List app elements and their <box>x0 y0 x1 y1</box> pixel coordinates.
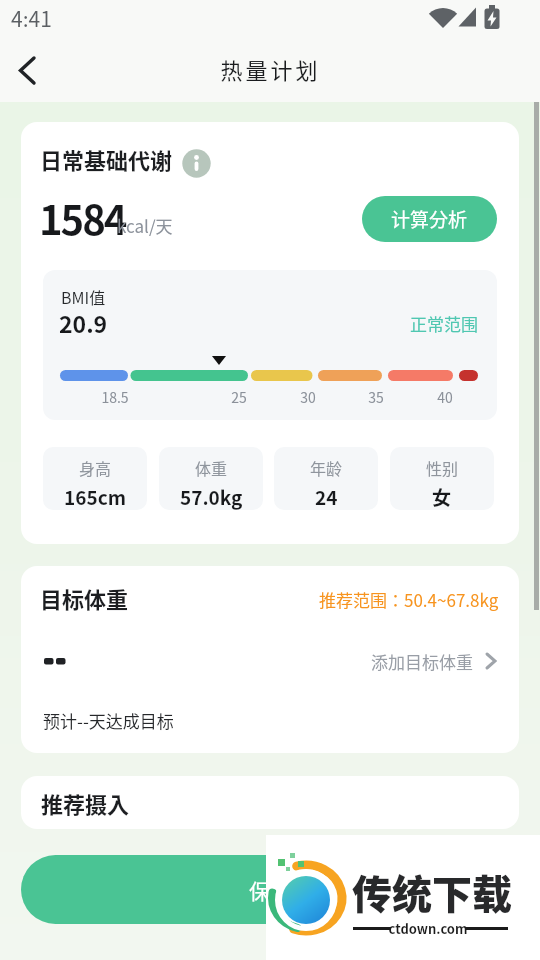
staticText: 4:41 <box>11 3 52 33</box>
staticText: 传统下载 <box>352 863 512 921</box>
staticText: 57.0kg <box>180 483 243 510</box>
staticText: 30 <box>300 387 316 407</box>
staticText: 保存 <box>249 875 291 905</box>
staticText: 目标体重 <box>40 582 129 614</box>
staticText: BMI值 <box>61 285 106 308</box>
staticText: 40 <box>437 387 453 407</box>
staticText: 20.9 <box>59 306 108 339</box>
staticText: 165cm <box>64 483 126 510</box>
staticText: 体重 <box>195 456 228 479</box>
staticText: 热量计划 <box>220 53 321 85</box>
staticText: 18.5 <box>101 387 129 407</box>
staticText: 身高 <box>79 456 112 479</box>
staticText: 女 <box>432 483 452 510</box>
staticText: ctdown.com <box>388 919 468 938</box>
staticText: 性别 <box>426 456 459 479</box>
staticText: 添加目标体重 <box>371 649 473 674</box>
staticText: 推荐范围：50.4~67.8kg <box>319 587 499 612</box>
button[interactable] <box>351 636 511 686</box>
button[interactable]: 保存 <box>21 855 519 924</box>
button[interactable]: 计算分析 <box>362 196 497 242</box>
button[interactable] <box>6 50 50 90</box>
staticText: 35 <box>368 387 384 407</box>
staticText: 24 <box>315 483 338 510</box>
staticText: 推荐摄入 <box>41 787 130 819</box>
staticText: 正常范围 <box>410 311 478 336</box>
staticText: 年龄 <box>310 456 343 479</box>
staticText: 1584 <box>39 189 126 247</box>
staticText: 25 <box>231 387 247 407</box>
staticText: 预计--天达成目标 <box>43 708 174 733</box>
staticText: 计算分析 <box>391 205 468 233</box>
staticText: kcal/天 <box>117 213 173 238</box>
staticText: 日常基础代谢 <box>40 143 173 175</box>
